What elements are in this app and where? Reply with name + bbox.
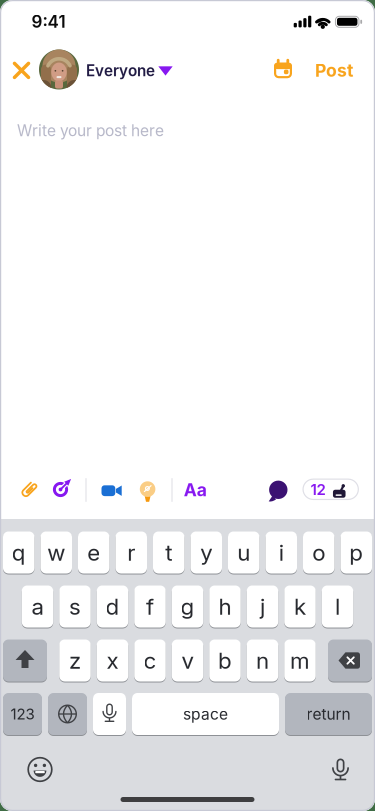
button[interactable]: k: [284, 584, 316, 628]
staticText: d: [105, 593, 119, 620]
button[interactable]: c: [134, 638, 166, 682]
button[interactable]: h: [209, 584, 241, 628]
staticText: 12: [310, 480, 325, 499]
button[interactable]: [135, 477, 161, 503]
button[interactable]: [95, 479, 129, 503]
staticText: s: [69, 593, 81, 620]
button[interactable]: r: [115, 530, 147, 574]
button[interactable]: t: [153, 530, 184, 574]
button[interactable]: space: [132, 692, 279, 736]
button[interactable]: q: [3, 530, 34, 574]
staticText: Everyone: [86, 61, 155, 80]
staticText: space: [183, 705, 228, 723]
staticText: Post: [315, 60, 353, 81]
button[interactable]: [46, 473, 80, 507]
staticText: p: [349, 539, 363, 566]
staticText: t: [165, 539, 172, 566]
button[interactable]: [268, 54, 298, 84]
button[interactable]: v: [172, 638, 203, 682]
staticText: Aa: [184, 479, 207, 500]
staticText: e: [87, 539, 100, 566]
staticText: 9:41: [31, 11, 65, 32]
staticText: return: [306, 705, 350, 723]
staticText: q: [12, 539, 26, 566]
staticText: h: [218, 593, 231, 620]
button[interactable]: g: [172, 584, 203, 628]
button[interactable]: Post: [315, 60, 353, 81]
staticText: m: [290, 647, 310, 674]
button[interactable]: m: [284, 638, 316, 682]
button[interactable]: x: [97, 638, 128, 682]
staticText: u: [237, 539, 250, 566]
button[interactable]: [328, 638, 372, 682]
button[interactable]: j: [247, 584, 278, 628]
button[interactable]: l: [322, 584, 353, 628]
staticText: r: [127, 539, 135, 566]
button[interactable]: s: [59, 584, 91, 628]
button[interactable]: y: [190, 530, 222, 574]
button[interactable]: p: [340, 530, 372, 574]
staticText: x: [106, 647, 118, 674]
staticText: 123: [10, 705, 34, 723]
staticText: j: [260, 593, 265, 620]
button[interactable]: [48, 692, 87, 736]
staticText: o: [312, 539, 325, 566]
button[interactable]: a: [22, 584, 53, 628]
button[interactable]: [262, 478, 288, 506]
staticText: y: [200, 539, 212, 566]
button[interactable]: f: [134, 584, 166, 628]
button[interactable]: return: [285, 692, 372, 736]
staticText: a: [31, 593, 43, 620]
button[interactable]: [7, 56, 35, 85]
staticText: Write your post here: [17, 121, 164, 140]
button[interactable]: [3, 638, 47, 682]
button[interactable]: e: [78, 530, 109, 574]
button[interactable]: b: [209, 638, 241, 682]
staticText: c: [143, 647, 156, 674]
button[interactable]: Everyone: [89, 55, 179, 85]
staticText: f: [146, 593, 154, 620]
button[interactable]: 123: [3, 692, 42, 736]
button[interactable]: [14, 474, 44, 504]
button[interactable]: [93, 692, 126, 736]
staticText: w: [47, 539, 65, 566]
button[interactable]: d: [97, 584, 128, 628]
staticText: l: [335, 593, 340, 620]
staticText: n: [256, 647, 269, 674]
button[interactable]: [25, 754, 55, 784]
button[interactable]: u: [228, 530, 259, 574]
staticText: v: [181, 647, 193, 674]
button[interactable]: n: [247, 638, 278, 682]
staticText: z: [69, 647, 81, 674]
button[interactable]: z: [59, 638, 91, 682]
button[interactable]: [325, 754, 355, 784]
staticText: b: [218, 647, 232, 674]
button[interactable]: i: [265, 530, 297, 574]
button[interactable]: w: [40, 530, 72, 574]
button[interactable]: [39, 49, 79, 89]
staticText: i: [279, 539, 284, 566]
staticText: g: [180, 593, 194, 620]
button[interactable]: o: [303, 530, 334, 574]
staticText: k: [294, 593, 306, 620]
button[interactable]: Aa: [184, 479, 207, 500]
button[interactable]: 12: [302, 479, 359, 500]
